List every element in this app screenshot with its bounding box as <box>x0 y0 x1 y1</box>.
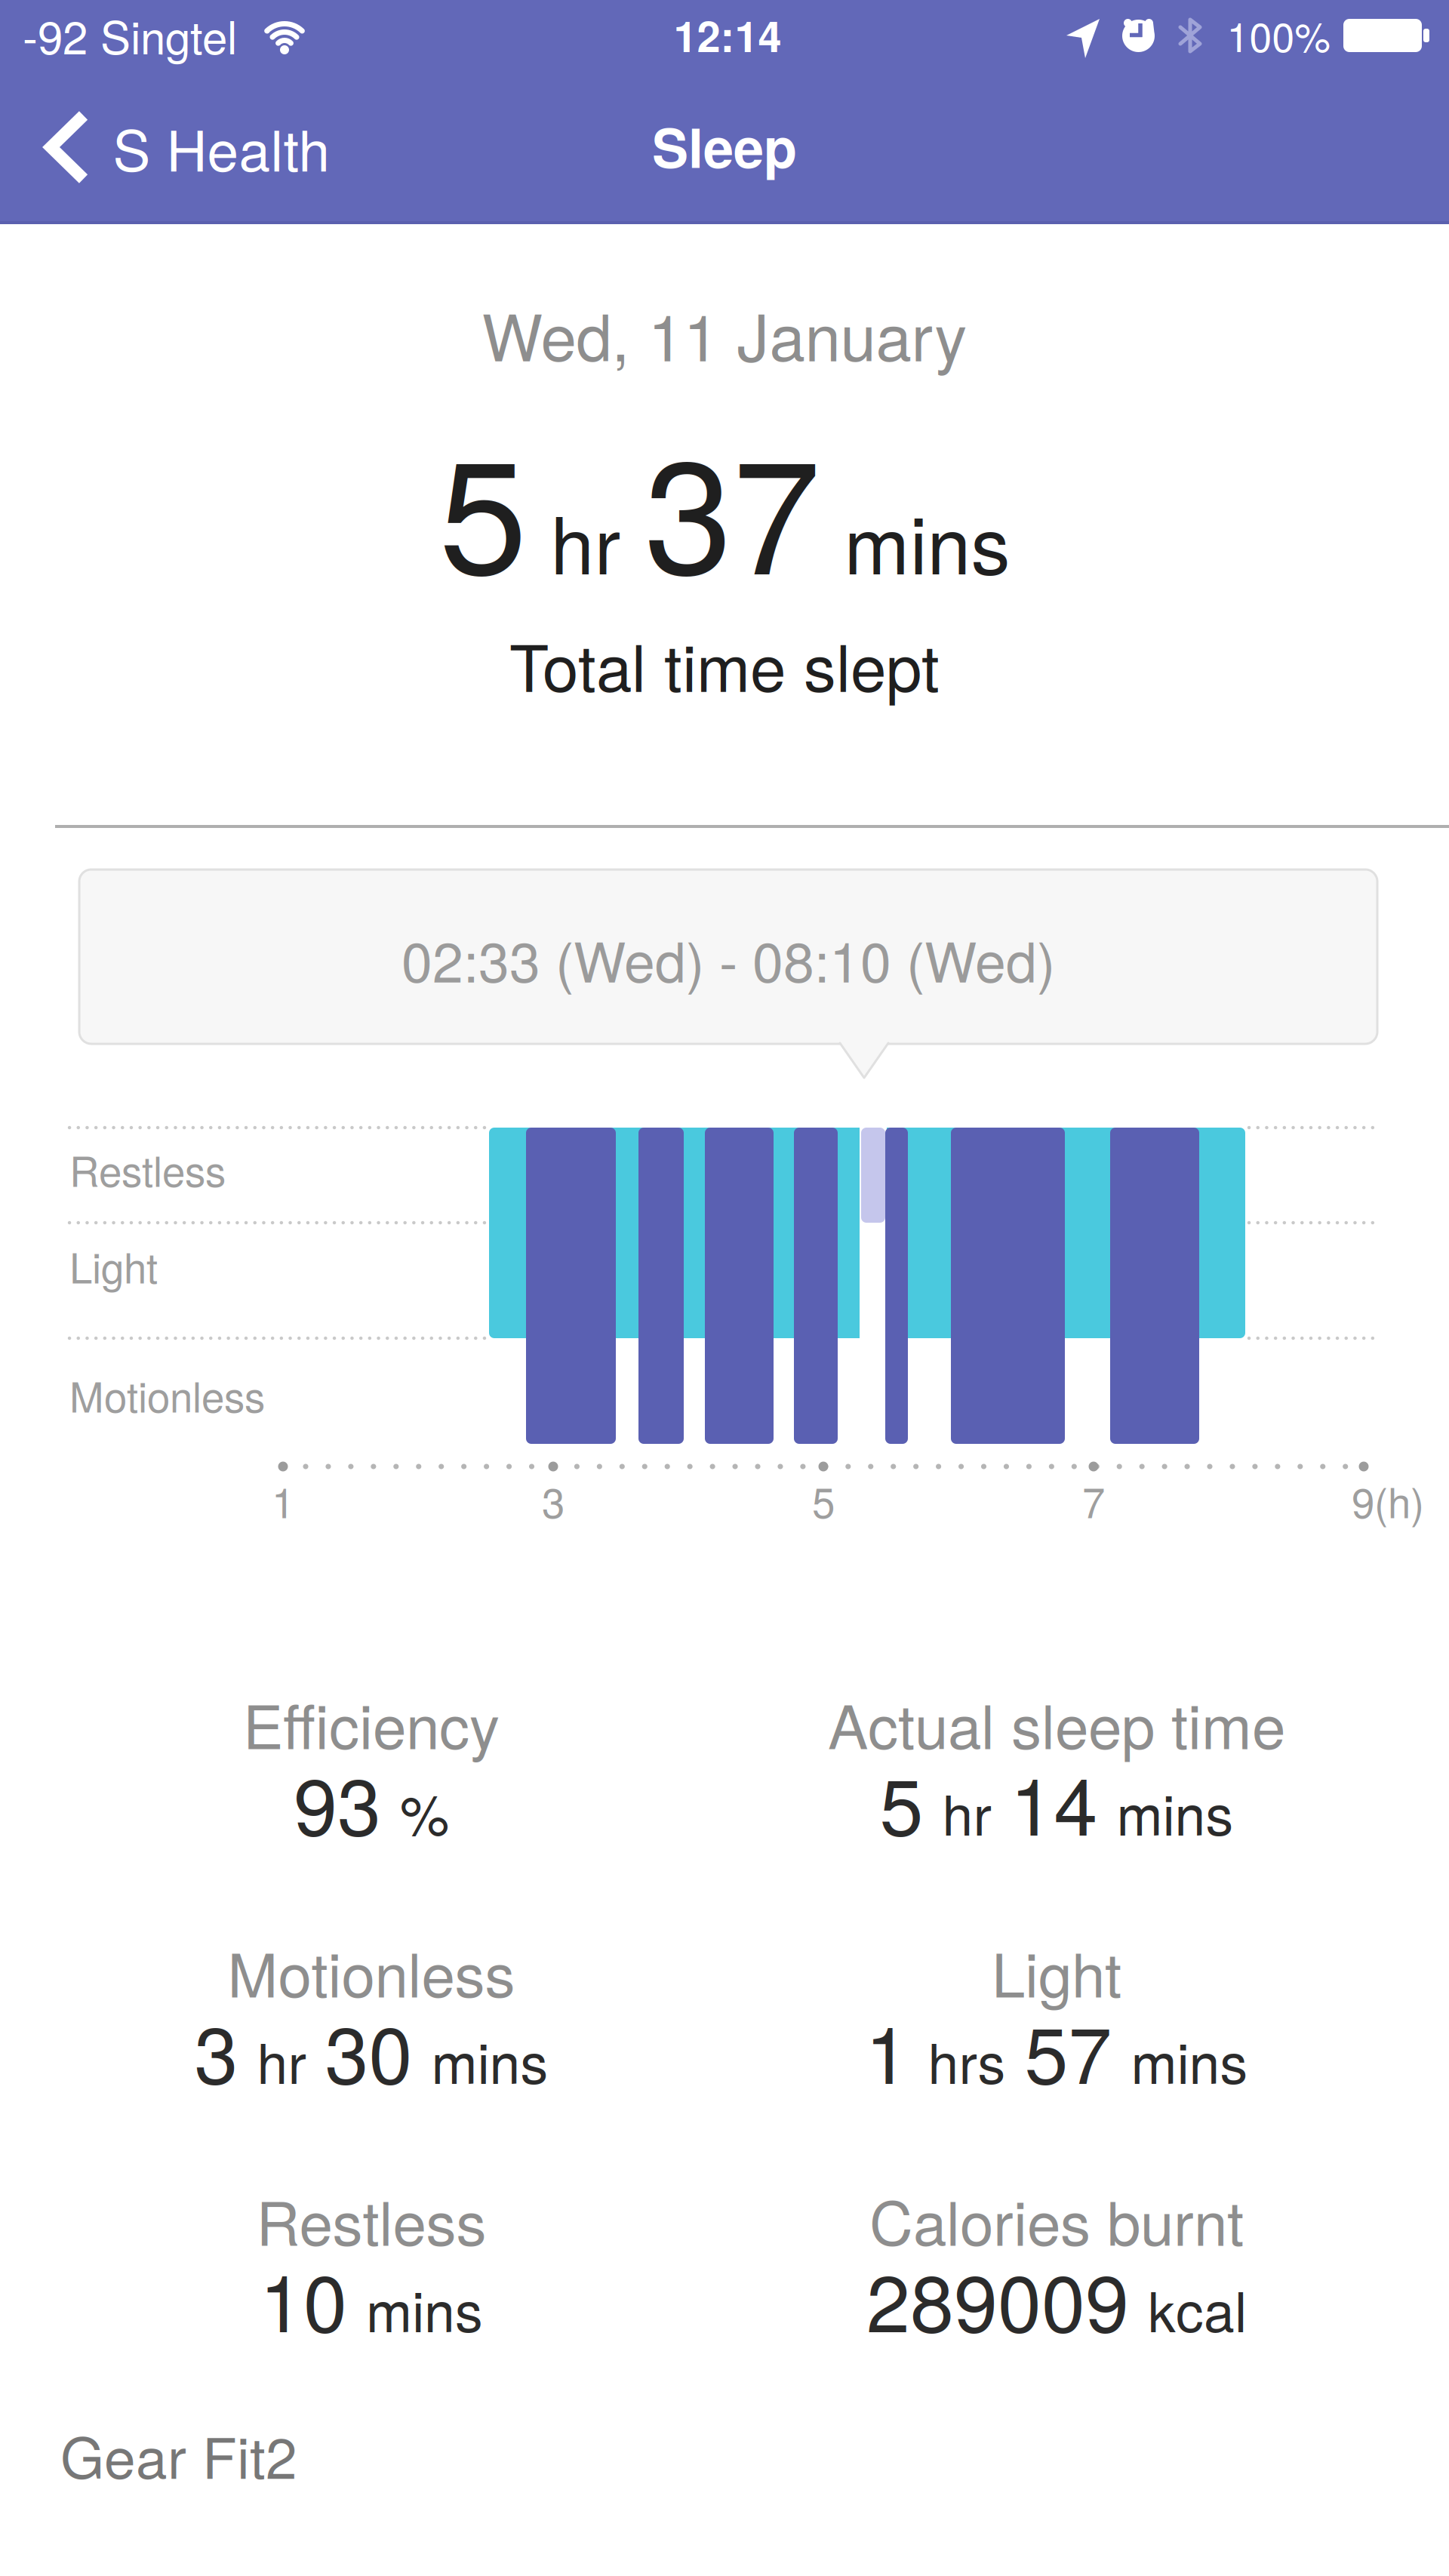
button[interactable]: Back to S Health <box>44 102 330 192</box>
staticText: 37 <box>644 392 821 620</box>
staticText: Wed, 11 January <box>482 287 967 380</box>
staticText: 5 <box>880 1745 923 1858</box>
staticText: Sleep <box>652 107 797 185</box>
staticText: 289009 <box>866 2242 1129 2354</box>
staticText: 5 <box>812 1471 835 1530</box>
staticText: % <box>400 1772 449 1851</box>
staticText: mins <box>1117 1772 1234 1851</box>
staticText: mins <box>366 2269 483 2348</box>
staticText: 02:33 (Wed) - 08:10 (Wed) <box>401 919 1055 998</box>
staticText: 3 <box>194 1994 238 2106</box>
staticText: Restless <box>69 1140 226 1199</box>
staticText: -92 Singtel <box>23 2 237 67</box>
staticText: 10 <box>260 2242 347 2354</box>
staticText: mins <box>844 484 1010 597</box>
staticText: hr <box>551 484 621 597</box>
staticText: Restless <box>256 2177 486 2263</box>
staticText: 3 <box>542 1471 565 1530</box>
staticText: Light <box>69 1236 158 1295</box>
staticText: Total time slept <box>509 618 940 710</box>
staticText: hrs <box>928 2020 1006 2100</box>
staticText: 30 <box>325 1994 412 2106</box>
staticText: 5 <box>439 392 527 620</box>
staticText: 1 <box>272 1471 294 1530</box>
staticText: Calories burnt <box>869 2177 1244 2263</box>
staticText: Efficiency <box>243 1680 500 1766</box>
staticText: Motionless <box>69 1365 265 1424</box>
staticText: 14 <box>1010 1745 1098 1858</box>
staticText: Motionless <box>228 1928 515 2015</box>
staticText: 1 <box>865 1994 909 2106</box>
staticText: 100% <box>1227 6 1330 64</box>
staticText: S Health <box>113 107 330 187</box>
staticText: 93 <box>294 1745 381 1858</box>
staticText: 9(h) <box>1352 1471 1424 1530</box>
staticText: Gear Fit2 <box>60 2414 297 2495</box>
staticText: hr <box>942 1772 991 1851</box>
staticText: 12:14 <box>674 4 781 65</box>
staticText: mins <box>431 2020 548 2100</box>
staticText: mins <box>1131 2020 1248 2100</box>
staticText: kcal <box>1148 2269 1247 2348</box>
staticText: Light <box>992 1928 1121 2015</box>
staticText: hr <box>257 2020 306 2100</box>
staticText: 57 <box>1024 1994 1112 2106</box>
staticText: Actual sleep time <box>828 1680 1285 1766</box>
staticText: 7 <box>1082 1471 1105 1530</box>
